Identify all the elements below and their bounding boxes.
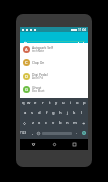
button[interactable]: Search bbox=[79, 128, 88, 138]
staticText: g bbox=[52, 110, 55, 116]
staticText: a bbox=[24, 110, 27, 116]
staticText: Autopark Self bbox=[32, 45, 53, 49]
staticText: Digi Pedal bbox=[32, 72, 48, 76]
staticText: q bbox=[22, 100, 25, 106]
staticText: l bbox=[81, 110, 83, 116]
staticText: e bbox=[34, 100, 37, 106]
button[interactable]: ?123 bbox=[20, 128, 27, 138]
button[interactable]: s bbox=[29, 108, 36, 118]
staticText: j bbox=[67, 110, 69, 116]
button[interactable]: e bbox=[32, 98, 39, 108]
staticText: G bbox=[25, 87, 29, 93]
staticText: m bbox=[73, 120, 77, 126]
button[interactable]: Clear search bbox=[75, 39, 82, 46]
staticText: , bbox=[32, 130, 34, 136]
staticText: Clap On bbox=[32, 60, 45, 64]
button[interactable]: g bbox=[50, 108, 57, 118]
staticText: Box Bluet bbox=[32, 89, 45, 93]
button[interactable]: v bbox=[50, 118, 57, 128]
staticText: ?123 bbox=[20, 131, 27, 135]
button[interactable]: Space bbox=[42, 128, 72, 138]
staticText: o bbox=[76, 100, 79, 106]
staticText: techNote bbox=[32, 49, 45, 53]
button[interactable]: p bbox=[81, 98, 88, 108]
button[interactable]: m bbox=[71, 118, 78, 128]
button[interactable]: More options bbox=[80, 39, 86, 45]
button[interactable]: A bbox=[20, 43, 88, 56]
staticText: d bbox=[38, 110, 41, 116]
button[interactable]: i bbox=[67, 98, 74, 108]
button[interactable]: a bbox=[22, 108, 29, 118]
staticText: A bbox=[25, 47, 28, 53]
button[interactable]: Home bbox=[51, 141, 58, 148]
staticText: t bbox=[49, 100, 51, 106]
staticText: i bbox=[70, 100, 72, 106]
button[interactable]: b bbox=[57, 118, 64, 128]
button[interactable]: . bbox=[73, 128, 80, 138]
staticText: 11:04 bbox=[78, 28, 87, 32]
button[interactable]: k bbox=[71, 108, 78, 118]
button[interactable]: Navigate up bbox=[22, 39, 29, 46]
staticText: c bbox=[45, 120, 48, 126]
button[interactable]: y bbox=[53, 98, 60, 108]
staticText: f bbox=[46, 110, 48, 116]
staticText: D bbox=[25, 74, 29, 80]
button[interactable]: Backspace bbox=[78, 118, 88, 128]
staticText: y bbox=[55, 100, 58, 106]
button[interactable]: u bbox=[60, 98, 67, 108]
staticText: Ghost bbox=[32, 85, 42, 89]
button[interactable]: Recent apps bbox=[71, 141, 78, 148]
button[interactable]: t bbox=[46, 98, 53, 108]
button[interactable]: l bbox=[78, 108, 85, 118]
staticText: . bbox=[76, 130, 78, 136]
button[interactable]: D bbox=[20, 70, 88, 83]
button[interactable]: h bbox=[57, 108, 64, 118]
button[interactable]: G bbox=[20, 83, 88, 96]
staticText: b bbox=[59, 120, 62, 126]
button[interactable]: c bbox=[43, 118, 50, 128]
button[interactable]: C bbox=[20, 56, 88, 69]
button[interactable]: j bbox=[64, 108, 71, 118]
button[interactable]: z bbox=[29, 118, 36, 128]
button[interactable]: n bbox=[64, 118, 71, 128]
button[interactable]: d bbox=[36, 108, 43, 118]
button[interactable]: r bbox=[39, 98, 46, 108]
staticText: C bbox=[25, 60, 28, 66]
staticText: z bbox=[32, 120, 34, 126]
button[interactable]: Back bbox=[30, 141, 37, 148]
staticText: k bbox=[73, 110, 76, 116]
button[interactable]: , bbox=[29, 128, 36, 138]
staticText: h bbox=[59, 110, 62, 116]
staticText: Accel Pd bbox=[32, 76, 43, 80]
staticText: w bbox=[27, 100, 31, 106]
button[interactable]: f bbox=[43, 108, 50, 118]
staticText: s bbox=[31, 110, 34, 116]
staticText: r bbox=[42, 100, 44, 106]
button[interactable]: Emoji bbox=[35, 128, 42, 138]
button[interactable]: o bbox=[74, 98, 81, 108]
staticText: n bbox=[66, 120, 69, 126]
staticText: v bbox=[52, 120, 55, 126]
button[interactable]: w bbox=[26, 98, 32, 108]
staticText: x bbox=[38, 120, 41, 126]
staticText: p bbox=[83, 100, 86, 106]
staticText: u bbox=[62, 100, 65, 106]
button[interactable]: Shift bbox=[20, 118, 29, 128]
button[interactable]: q bbox=[20, 98, 26, 108]
button[interactable]: x bbox=[36, 118, 43, 128]
